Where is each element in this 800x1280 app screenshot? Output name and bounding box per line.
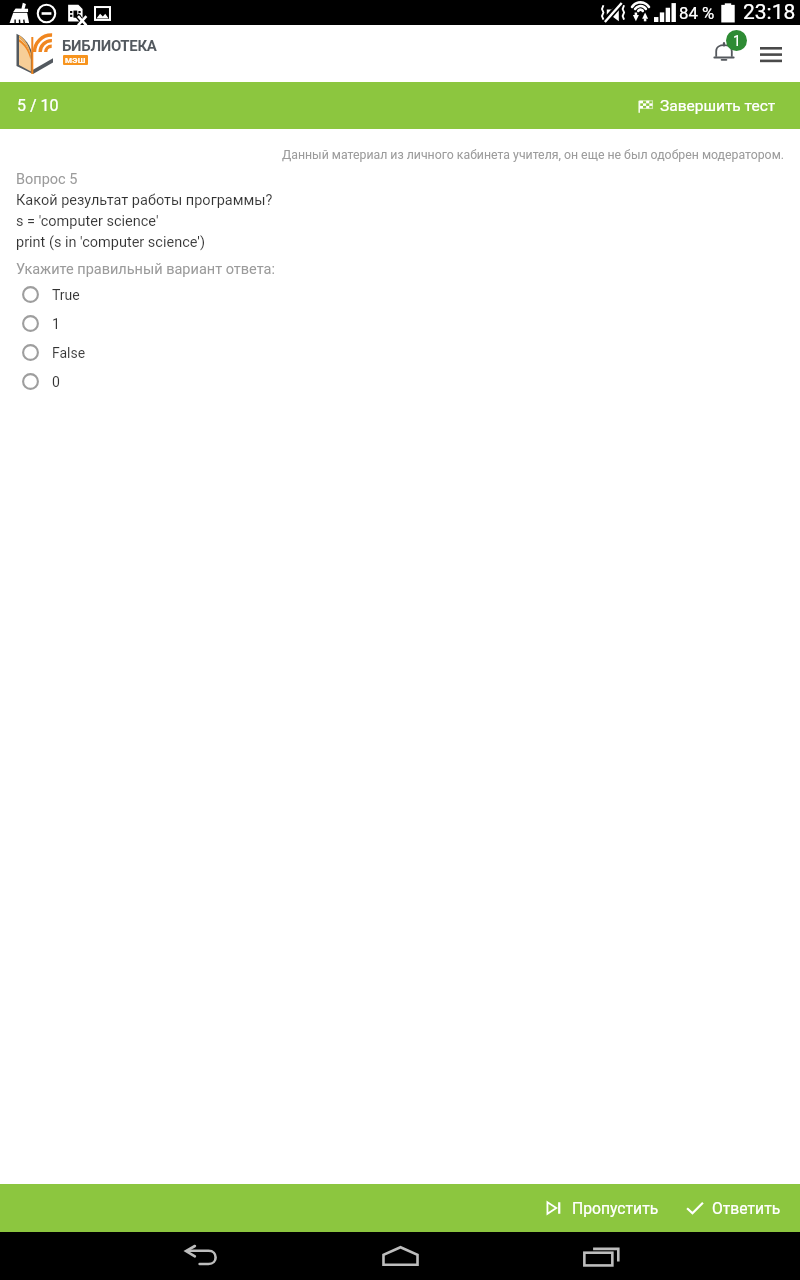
staticText: print (s in 'computer science') [16,234,205,255]
button[interactable]: Ответить [680,1191,787,1225]
staticText: Какой результат работы программы? [16,192,273,213]
button[interactable]: Back [168,1232,234,1280]
staticText: 1 [52,316,60,332]
staticText: 0 [52,374,60,390]
staticText: Ответить [712,1199,781,1217]
staticText: s = 'computer science' [16,213,159,234]
staticText: 1 [733,33,741,49]
staticText: БИБЛИОТЕКА [62,37,157,55]
staticText: 23:18 [743,0,796,25]
staticText: 84 % [679,3,715,23]
staticText: Завершить тест [660,97,776,115]
button[interactable]: False [0,338,800,367]
button[interactable]: Recents [568,1232,634,1280]
button[interactable]: Пропустить [541,1191,665,1225]
staticText: False [52,345,86,361]
staticText: Пропустить [572,1199,659,1217]
staticText: МЭШ [65,56,86,65]
staticText: 5 / 10 [17,96,59,115]
button[interactable]: Завершить тест [631,90,782,122]
staticText: Данный материал из личного кабинета учит… [0,148,784,162]
staticText: Укажите правильный вариант ответа: [16,261,275,280]
button[interactable]: Home [367,1232,433,1280]
staticText: True [52,287,80,303]
button[interactable]: 0 [0,367,800,396]
button[interactable]: True [0,280,800,309]
staticText: Вопрос 5 [16,171,78,192]
button[interactable]: Notifications [697,31,747,77]
button[interactable]: 1 [0,309,800,338]
button[interactable]: Menu [751,34,791,74]
